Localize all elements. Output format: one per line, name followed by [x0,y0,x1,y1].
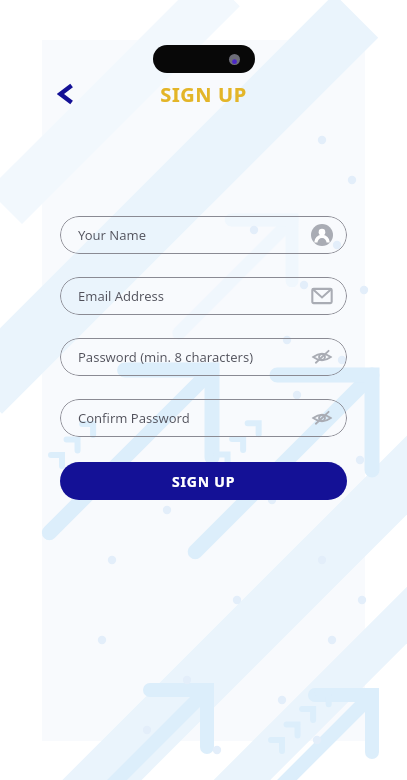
button[interactable]: Email Address [60,277,347,315]
staticText: Confirm Password [78,409,190,427]
staticText: Password (min. 8 characters) [78,348,254,366]
button[interactable]: Confirm Password [60,399,347,437]
button[interactable]: Back [51,79,81,109]
staticText: Your Name [78,226,147,244]
button[interactable]: SIGN UP [60,462,347,500]
staticText: SIGN UP [172,472,236,491]
staticText: SIGN UP [160,81,247,108]
button[interactable]: Your Name [60,216,347,254]
staticText: Email Address [78,287,164,305]
button[interactable]: Password (min. 8 characters) [60,338,347,376]
